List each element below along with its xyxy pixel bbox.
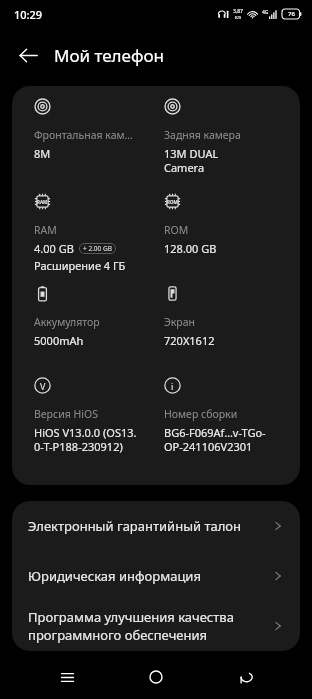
staticText: ROM xyxy=(167,199,178,205)
staticText: K/S xyxy=(235,15,242,20)
staticText: программного обеспечения xyxy=(28,626,208,644)
staticText: Версия HiOS xyxy=(34,407,98,421)
button[interactable]: Back xyxy=(223,655,269,699)
staticText: ROM xyxy=(164,223,189,237)
staticText: Мой телефон xyxy=(54,44,165,67)
staticText: Расширение 4 ГБ xyxy=(34,258,126,273)
staticText: 10:29 xyxy=(14,7,43,22)
staticText: 8M xyxy=(34,146,51,161)
button[interactable]: Программа улучшения качества xyxy=(12,601,300,651)
button[interactable]: Recents xyxy=(44,655,90,699)
staticText: 128.00 GB xyxy=(164,241,217,256)
staticText: BG6-F069Af…v-TGo- OP-241106V2301 xyxy=(164,425,266,454)
staticText: 4G xyxy=(262,9,269,16)
staticText: 76 xyxy=(288,10,295,18)
staticText: Электронный гарантийный талон xyxy=(28,517,242,535)
staticText: RAM xyxy=(37,199,48,205)
staticText: V xyxy=(40,380,46,392)
staticText: 13M DUAL Camera xyxy=(164,146,219,175)
staticText: Задняя камера xyxy=(164,128,241,142)
staticText: Юридическая информация xyxy=(28,567,201,585)
button[interactable]: Back xyxy=(8,35,48,75)
button[interactable]: Электронный гарантийный талон xyxy=(12,501,300,551)
staticText: Фронтальная кам… xyxy=(34,128,133,142)
staticText: i xyxy=(171,380,174,392)
staticText: 5000mAh xyxy=(34,333,84,348)
staticText: 3,87 xyxy=(233,8,243,15)
staticText: Аккумулятор xyxy=(34,315,100,329)
staticText: RAM xyxy=(34,223,57,237)
button[interactable]: Юридическая информация xyxy=(12,551,300,601)
staticText: Программа улучшения качества xyxy=(28,608,234,626)
staticText: Экран xyxy=(164,315,196,329)
staticText: HiOS V13.0.0 (OS13. 0-T-P188-230912) xyxy=(34,425,137,454)
staticText: Номер сборки xyxy=(164,407,238,421)
button[interactable]: Home xyxy=(133,655,179,699)
staticText: 720X1612 xyxy=(164,333,215,348)
staticText: 4.00 GB xyxy=(34,241,74,256)
staticText: + 2.00 GB xyxy=(83,244,112,253)
